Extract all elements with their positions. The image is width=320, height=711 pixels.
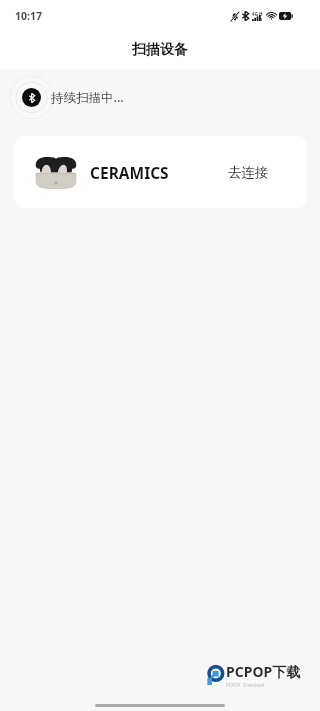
staticText: 持续扫描中... — [51, 89, 124, 106]
button[interactable]: CERAMICS — [14, 136, 307, 208]
button[interactable]: 持续扫描中 — [0, 74, 320, 120]
staticText: 10:17 — [15, 9, 42, 23]
staticText: CERAMICS — [90, 162, 169, 183]
staticText: PCPOP Download — [226, 682, 265, 688]
staticText: PCPOP下载 — [226, 662, 301, 681]
staticText: 扫描设备 — [132, 41, 188, 59]
button[interactable]: 去连接 — [221, 156, 276, 189]
staticText: 4G — [252, 11, 258, 17]
staticText: 去连接 — [228, 164, 269, 181]
staticText: HD — [259, 11, 264, 21]
